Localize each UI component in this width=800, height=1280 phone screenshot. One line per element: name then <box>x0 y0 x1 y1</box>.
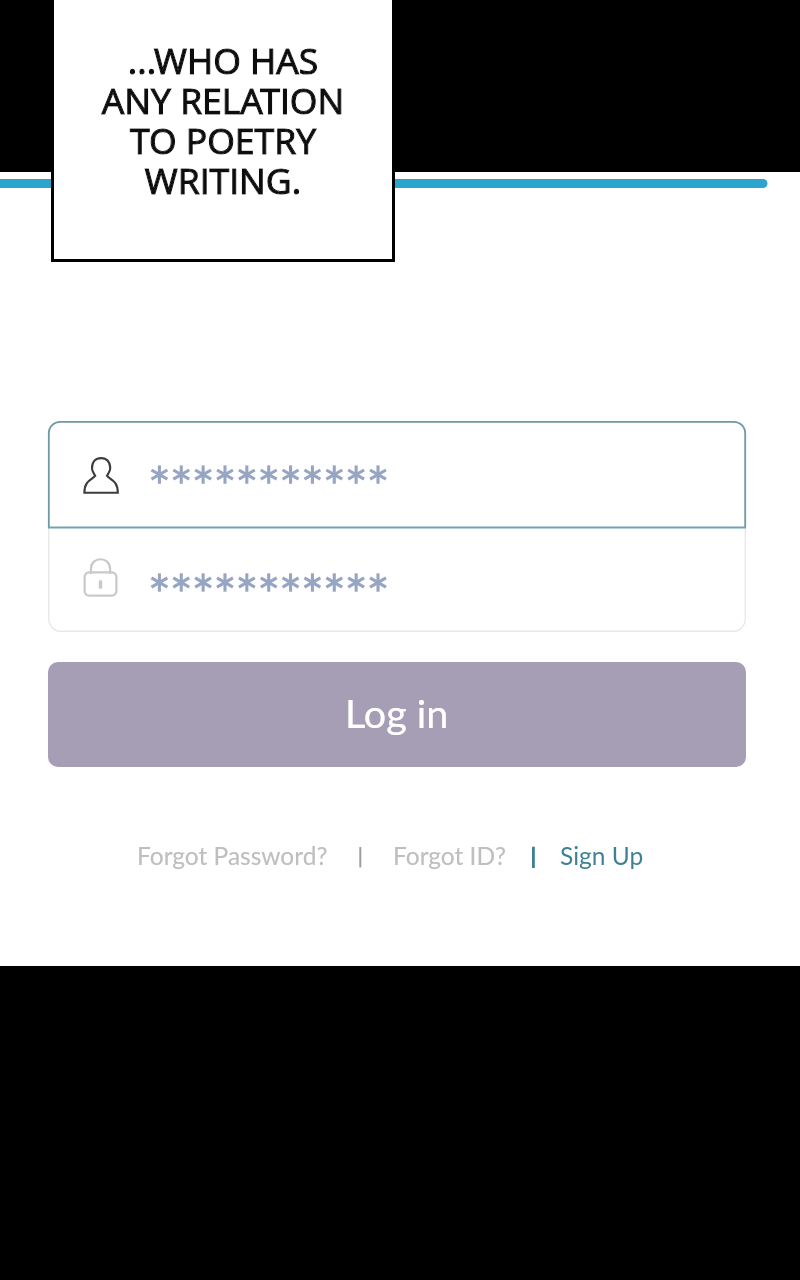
button[interactable]: Sign Up <box>560 841 644 870</box>
staticText: Forgot Password? <box>137 841 328 870</box>
staticText: Log in <box>345 689 449 736</box>
staticText: ...WHO HAS ANY RELATION TO POETRY WRITIN… <box>54 36 392 205</box>
button[interactable]: Forgot ID? <box>393 841 507 870</box>
staticText: ...WHO HAS ANY RELATION TO POETRY WRITIN… <box>54 36 392 205</box>
button[interactable]: Password <box>48 528 746 629</box>
staticText: Forgot ID? <box>393 841 507 870</box>
button[interactable]: Forgot Password? <box>137 841 328 870</box>
button[interactable]: Username <box>48 421 746 528</box>
button[interactable]: Log in <box>48 662 746 767</box>
staticText: Sign Up <box>560 841 644 870</box>
